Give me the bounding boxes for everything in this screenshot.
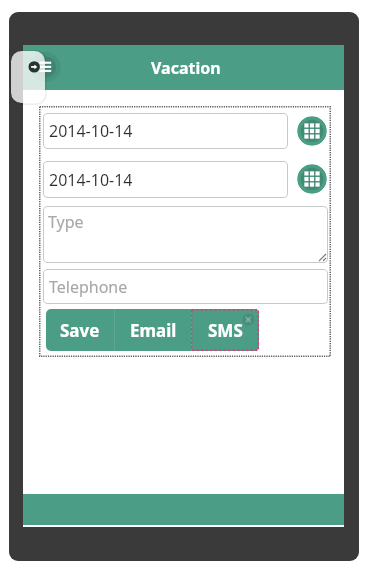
staticText: SMS (208, 319, 243, 342)
staticText: Type (48, 211, 84, 233)
staticText: Vacation (151, 57, 221, 79)
button[interactable]: 2014-10-14 (43, 113, 288, 149)
button[interactable]: Type (43, 206, 328, 263)
button[interactable]: 2014-10-14 (43, 161, 288, 198)
button[interactable]: Email (115, 309, 191, 351)
staticText: Save (60, 319, 100, 342)
button[interactable]: Pick date (297, 116, 327, 146)
button[interactable]: Save (46, 309, 114, 351)
staticText: 2014-10-14 (49, 169, 133, 191)
button[interactable]: Telephone (43, 269, 328, 304)
staticText: 2014-10-14 (49, 120, 133, 142)
button[interactable]: SMS (192, 309, 259, 351)
button[interactable]: Pick date (297, 164, 327, 194)
staticText: Telephone (49, 276, 128, 298)
staticText: Email (130, 319, 177, 342)
button[interactable]: Open navigation drawer (26, 56, 54, 78)
